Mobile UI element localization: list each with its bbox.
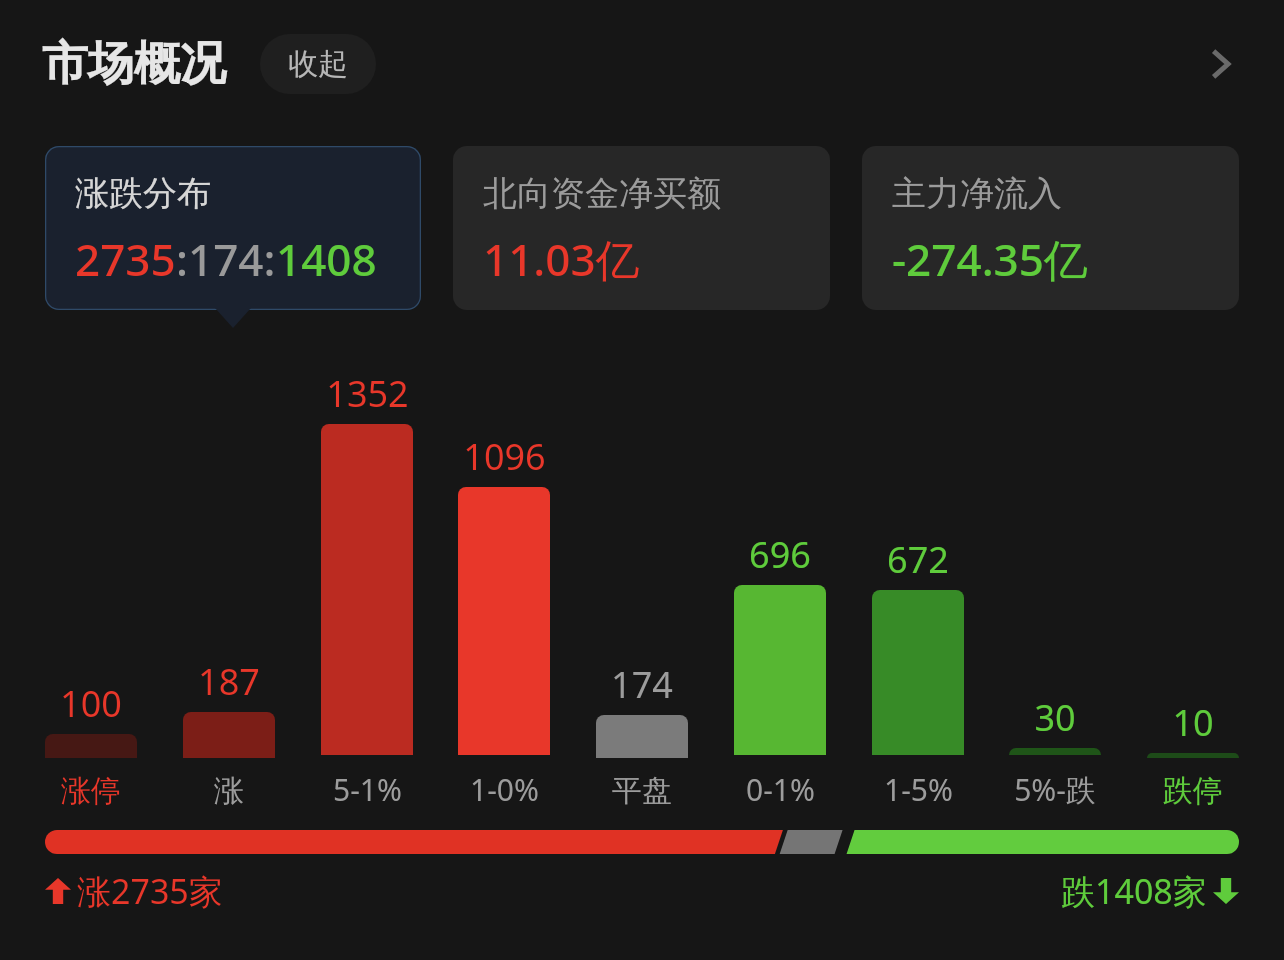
button[interactable] xyxy=(45,830,1239,854)
button[interactable]: 主力净流入 xyxy=(862,146,1239,310)
staticText: 收起 xyxy=(288,45,348,83)
staticText: 平盘 xyxy=(612,772,672,810)
staticText: 0-1% xyxy=(746,769,815,810)
staticText: -274.35亿 xyxy=(892,229,1088,289)
staticText: 1096 xyxy=(463,432,546,481)
staticText: 1-0% xyxy=(470,769,539,810)
staticText: 1408 xyxy=(276,229,377,289)
button[interactable]: 1352 xyxy=(321,340,413,810)
button[interactable]: 174 xyxy=(596,340,688,810)
staticText: 涨2735家 xyxy=(77,868,223,914)
staticText: 5-1% xyxy=(333,769,402,810)
staticText: 跌1408家 xyxy=(1061,868,1207,914)
staticText: 174 xyxy=(611,660,673,709)
staticText: 187 xyxy=(198,657,260,706)
staticText: 涨停 xyxy=(61,772,121,810)
staticText: 跌停 xyxy=(1163,772,1223,810)
staticText: 涨跌分布 xyxy=(75,172,211,215)
button[interactable]: 查看更多 xyxy=(1182,26,1258,102)
button[interactable]: 187 xyxy=(183,340,275,810)
button[interactable]: 672 xyxy=(872,340,964,810)
button[interactable]: 1096 xyxy=(458,340,550,810)
staticText: 主力净流入 xyxy=(892,172,1062,215)
button[interactable]: 696 xyxy=(734,340,826,810)
staticText: 696 xyxy=(749,530,811,579)
staticText: 市场概况 xyxy=(42,35,226,93)
staticText: 2735 xyxy=(75,229,176,289)
staticText: 北向资金净买额 xyxy=(483,172,721,215)
staticText: :174: xyxy=(176,229,276,289)
button[interactable]: 100 xyxy=(45,340,137,810)
button[interactable]: 收起 xyxy=(260,34,376,94)
button[interactable]: 北向资金净买额 xyxy=(453,146,830,310)
staticText: 涨停-5% xyxy=(183,772,275,810)
button[interactable]: 10 xyxy=(1147,340,1239,810)
button[interactable]: 30 xyxy=(1009,340,1101,810)
staticText: 672 xyxy=(887,535,949,584)
button[interactable]: 涨跌分布 xyxy=(45,146,421,310)
staticText: 10 xyxy=(1172,698,1214,747)
staticText: 11.03亿 xyxy=(483,229,640,289)
staticText: 1-5% xyxy=(884,769,953,810)
staticText: 1352 xyxy=(326,369,409,418)
staticText: 100 xyxy=(60,679,122,728)
staticText: 5%-跌停 xyxy=(1009,769,1101,810)
staticText: 30 xyxy=(1034,693,1076,742)
